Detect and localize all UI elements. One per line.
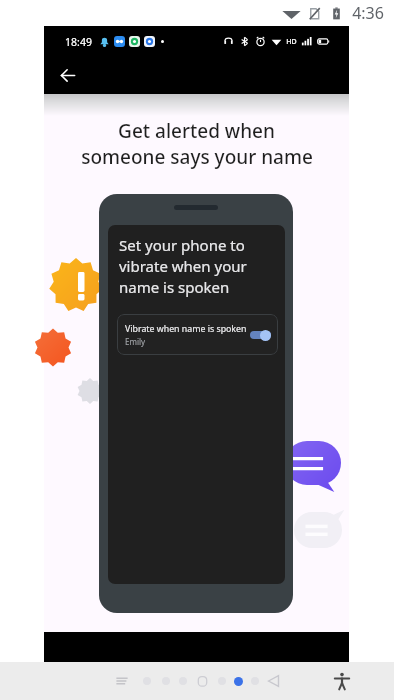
button[interactable]: Current page [234, 677, 243, 686]
staticText: HD [286, 37, 297, 47]
button[interactable]: Back [266, 673, 282, 689]
staticText: vibrate when your [119, 256, 247, 276]
button[interactable]: Accessibility [332, 671, 352, 691]
staticText: Emily [125, 336, 146, 347]
button[interactable]: Back [52, 60, 82, 90]
staticText: Set your phone to [119, 235, 245, 255]
staticText: Vibrate when name is spoken [125, 323, 247, 335]
button[interactable]: Home [195, 674, 210, 689]
staticText: Get alerted when [118, 118, 275, 144]
staticText: 18:49 [65, 35, 92, 49]
button[interactable]: Menu [112, 671, 132, 691]
button[interactable]: Vibrate when name is spoken [117, 314, 278, 355]
staticText: name is spoken [119, 277, 230, 297]
staticText: 4:36 [352, 2, 384, 24]
staticText: someone says your name [81, 144, 313, 170]
